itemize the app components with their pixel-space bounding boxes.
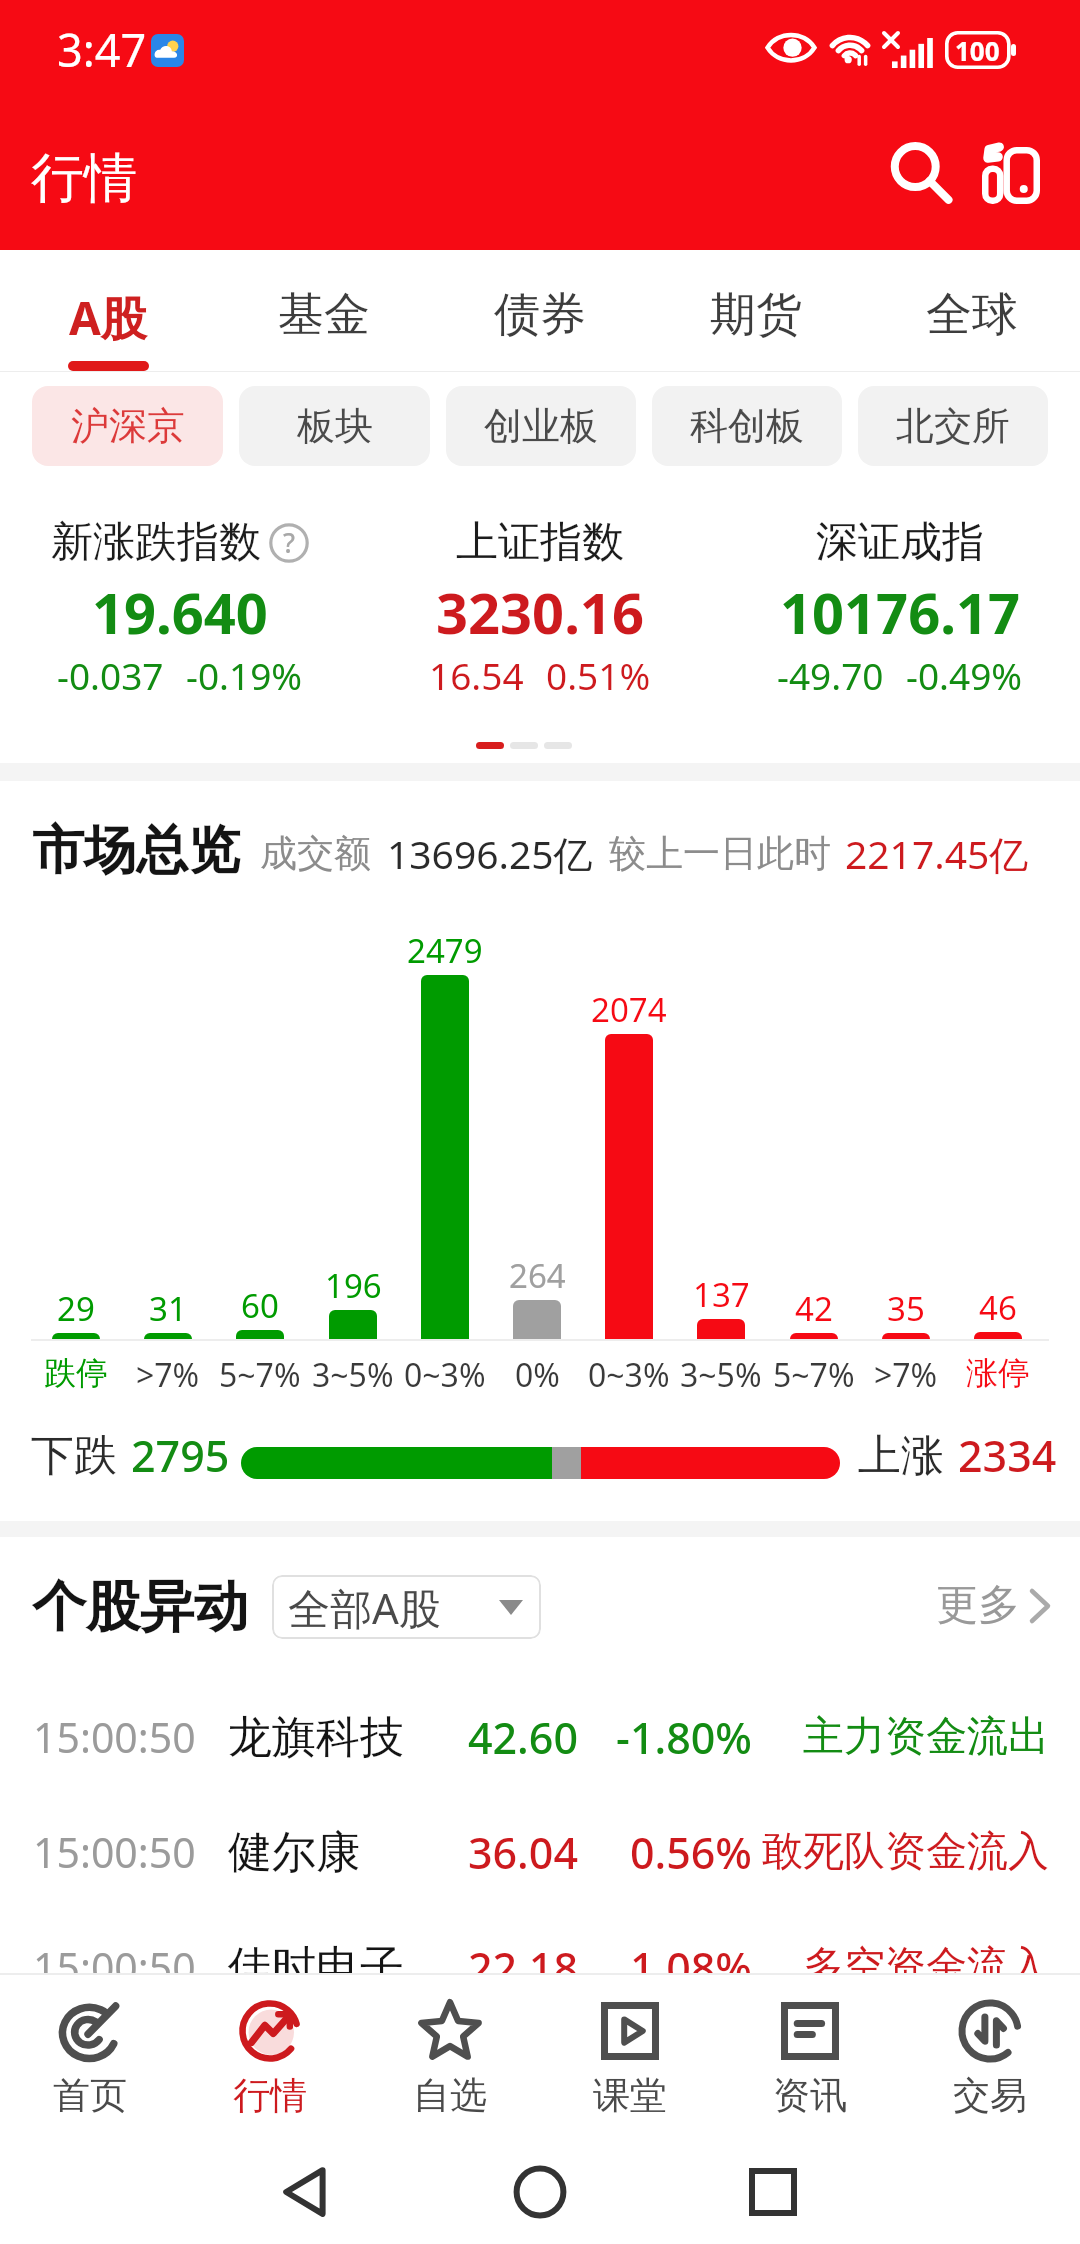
button[interactable]: Search [878, 130, 964, 216]
button[interactable]: 板块 [239, 386, 430, 466]
button[interactable]: 15:00:50 [0, 1795, 1080, 1909]
staticText: 42.60 [400, 1708, 578, 1767]
staticText: 健尔康 [228, 1825, 360, 1880]
staticText: 沪深京 [71, 402, 185, 450]
staticText: 新涨跌指数 [51, 516, 261, 569]
staticText: -49.70 [777, 650, 884, 700]
button[interactable]: Customize layout [968, 130, 1054, 216]
button[interactable]: 自选 [360, 1973, 540, 2123]
staticText: -0.19% [186, 650, 303, 700]
button[interactable]: 上证指数 [360, 508, 720, 763]
button[interactable]: Recents [723, 2142, 823, 2242]
staticText: 5~7% [219, 1353, 301, 1397]
staticText: 0~3% [404, 1353, 486, 1397]
staticText: 较上一日此时 [609, 830, 831, 877]
staticText: 资讯 [773, 2072, 847, 2119]
staticText: 成交额 [260, 830, 371, 877]
staticText: 0~3% [588, 1353, 670, 1397]
button[interactable]: Home [490, 2142, 590, 2242]
staticText: 龙旗科技 [228, 1710, 404, 1765]
button[interactable]: 15:00:50 [0, 1680, 1080, 1794]
button[interactable]: 沪深京 [32, 386, 223, 466]
button[interactable]: 行情 [180, 1973, 360, 2123]
button[interactable]: A股 [0, 250, 216, 372]
staticText: 3230.16 [436, 574, 644, 650]
button[interactable]: 创业板 [446, 386, 636, 466]
staticText: 2479 [407, 928, 483, 973]
staticText: 3~5% [680, 1353, 762, 1397]
staticText: ? [283, 524, 296, 561]
button[interactable]: 交易 [900, 1973, 1080, 2123]
staticText: 1.08% [586, 1938, 752, 1997]
staticText: 课堂 [593, 2072, 667, 2119]
staticText: 敢死队资金流入 [762, 1826, 1049, 1878]
staticText: -0.037 [57, 650, 164, 700]
staticText: 264 [509, 1253, 566, 1298]
staticText: 42 [795, 1286, 833, 1331]
staticText: 196 [325, 1263, 382, 1308]
button[interactable]: Back [257, 2142, 357, 2242]
staticText: 全部A股 [288, 1579, 441, 1636]
staticText: 市场总览 [32, 818, 240, 884]
staticText: 更多 [936, 1579, 1020, 1632]
staticText: 北交所 [896, 402, 1010, 450]
staticText: 主力资金流出 [803, 1711, 1049, 1763]
staticText: 跌停 [44, 1353, 108, 1393]
staticText: 2217.45亿 [845, 827, 1029, 880]
button[interactable]: 15:00:50 [0, 1910, 1080, 2024]
button[interactable]: 全球 [864, 250, 1080, 372]
staticText: 22.18 [400, 1938, 578, 1997]
staticText: 5~7% [773, 1353, 855, 1397]
staticText: 基金 [278, 286, 370, 344]
staticText: 2795 [131, 1426, 230, 1485]
staticText: 创业板 [484, 402, 598, 450]
staticText: 35 [887, 1286, 925, 1331]
button[interactable]: 全部A股 [288, 1575, 523, 1639]
staticText: 多空资金流入 [803, 1941, 1049, 1993]
button[interactable]: 更多 [936, 1579, 1050, 1632]
staticText: 137 [693, 1272, 750, 1317]
staticText: 板块 [297, 402, 373, 450]
staticText: 36.04 [400, 1823, 578, 1882]
staticText: 涨停 [966, 1353, 1030, 1393]
staticText: 2334 [958, 1426, 1057, 1485]
button[interactable]: 债券 [432, 250, 648, 372]
staticText: 3~5% [312, 1353, 394, 1397]
button[interactable]: 课堂 [540, 1973, 720, 2123]
staticText: 行情 [233, 2072, 307, 2119]
staticText: 深证成指 [816, 516, 984, 569]
staticText: 债券 [494, 286, 586, 344]
staticText: 期货 [710, 286, 802, 344]
staticText: 15:00:50 [33, 1939, 196, 1995]
button[interactable]: 北交所 [858, 386, 1048, 466]
button[interactable]: 基金 [216, 250, 432, 372]
staticText: 15:00:50 [33, 1709, 196, 1765]
staticText: 下跌 [31, 1429, 117, 1483]
staticText: 首页 [53, 2072, 127, 2119]
staticText: 46 [979, 1285, 1017, 1330]
staticText: 0.51% [546, 650, 651, 700]
staticText: 100 [955, 33, 1000, 68]
staticText: 19.640 [92, 574, 268, 650]
staticText: 全球 [926, 286, 1018, 344]
staticText: A股 [69, 286, 147, 349]
staticText: 2074 [591, 987, 667, 1032]
button[interactable]: 期货 [648, 250, 864, 372]
staticText: 佳时电子 [228, 1940, 404, 1995]
button[interactable]: 新涨跌指数 [0, 508, 360, 763]
staticText: 3:47 [57, 19, 147, 80]
staticText: 上证指数 [456, 516, 624, 569]
staticText: 13696.25亿 [387, 827, 593, 880]
button[interactable]: 资讯 [720, 1973, 900, 2123]
staticText: 行情 [31, 145, 137, 212]
staticText: 60 [241, 1283, 279, 1328]
staticText: 0.56% [586, 1823, 752, 1882]
staticText: 个股异动 [32, 1573, 248, 1641]
button[interactable]: 首页 [0, 1973, 180, 2123]
button[interactable]: 科创板 [652, 386, 842, 466]
staticText: -0.49% [906, 650, 1023, 700]
staticText: >7% [136, 1353, 200, 1397]
staticText: >7% [874, 1353, 938, 1397]
staticText: 16.54 [429, 650, 524, 700]
button[interactable]: 深证成指 [720, 508, 1080, 763]
